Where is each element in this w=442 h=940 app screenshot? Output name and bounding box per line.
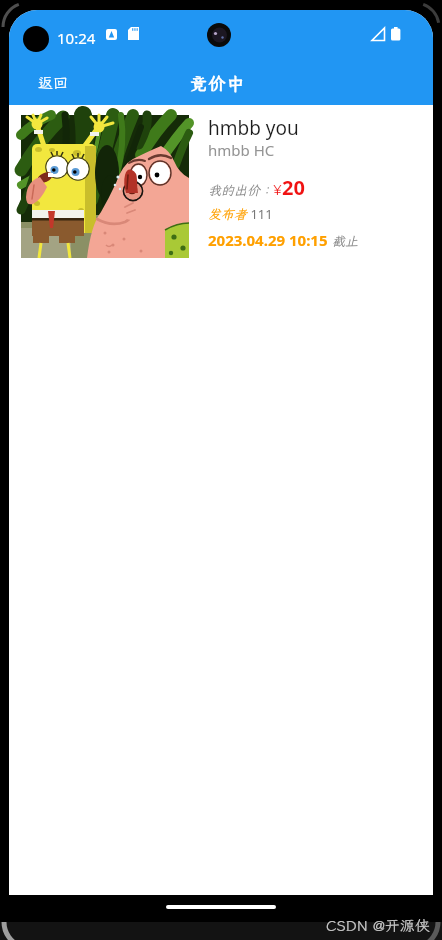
staticText: hmbb you xyxy=(208,115,299,141)
staticText: 发布者 111 xyxy=(208,205,273,223)
staticText: 竞价中 xyxy=(190,72,246,94)
button[interactable]: 返回 xyxy=(29,60,78,105)
staticText: hmbb HC xyxy=(208,140,275,160)
staticText: 2023.04.29 10:15 截止 xyxy=(208,230,359,250)
button[interactable]: hmbb you xyxy=(9,105,433,270)
staticText: 10:24 xyxy=(57,28,96,48)
staticText: 返回 xyxy=(38,73,69,93)
staticText: 我的出价：¥20 xyxy=(208,174,305,201)
staticText: CSDN @开源侠 xyxy=(326,916,430,936)
